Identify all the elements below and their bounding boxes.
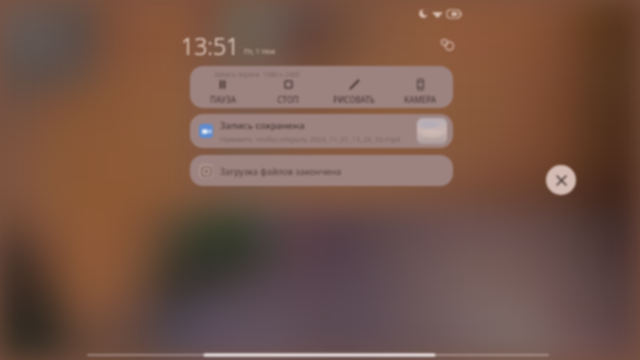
staticText: КАМЕРА	[404, 94, 436, 105]
button[interactable]: Запись экрана 1080 x 2400	[190, 66, 453, 108]
button[interactable]: КАМЕРА	[387, 79, 453, 105]
button[interactable]: ПАУЗА	[190, 79, 255, 105]
staticText: Загрузка файлов закончена	[220, 165, 342, 177]
button[interactable]: Notification settings	[437, 34, 457, 54]
staticText: ПАУЗА	[210, 94, 236, 105]
staticText: Запись сохранена	[220, 119, 305, 132]
staticText: Нажмите, чтобы открыть 2024_11_01_13_24_…	[220, 134, 401, 144]
staticText: 13:51	[181, 30, 240, 61]
button[interactable]: Запись сохранена	[190, 114, 453, 148]
button[interactable]: Close	[546, 165, 576, 195]
button[interactable]: СТОП	[255, 79, 321, 105]
staticText: Пт, 1 Ноя	[244, 47, 275, 57]
button[interactable]: РИСОВАТЬ	[321, 79, 387, 105]
button[interactable]: Загрузка файлов закончена	[190, 155, 453, 186]
staticText: Запись экрана 1080 x 2400	[214, 70, 300, 79]
staticText: РИСОВАТЬ	[333, 94, 375, 105]
staticText: СТОП	[277, 94, 299, 105]
